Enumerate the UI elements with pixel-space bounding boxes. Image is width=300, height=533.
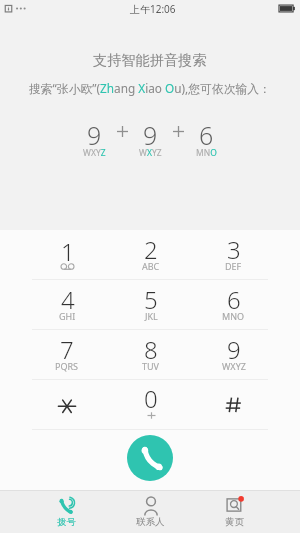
button[interactable]: 8: [109, 330, 192, 380]
staticText: 黄页: [225, 516, 244, 528]
button[interactable]: [25, 380, 109, 430]
button[interactable]: 5: [109, 280, 192, 330]
button[interactable]: 9: [192, 330, 275, 380]
staticText: WXYZ: [139, 147, 162, 159]
staticText: 7: [60, 333, 74, 366]
button[interactable]: 2: [109, 230, 192, 280]
staticText: 8: [144, 333, 158, 366]
staticText: PQRS: [55, 360, 79, 372]
button[interactable]: 联系人: [108, 491, 192, 533]
button[interactable]: Call: [127, 435, 173, 481]
staticText: 9: [143, 118, 158, 152]
staticText: 6: [199, 118, 214, 152]
button[interactable]: 3: [192, 230, 275, 280]
staticText: 上午12:06: [130, 2, 176, 16]
button[interactable]: 0: [109, 380, 192, 430]
staticText: 5: [144, 283, 158, 316]
staticText: GHI: [59, 310, 76, 322]
staticText: WXYZ: [83, 147, 106, 159]
staticText: ABC: [142, 260, 160, 272]
button[interactable]: 1: [25, 230, 109, 280]
staticText: TUV: [142, 360, 159, 372]
button[interactable]: 黄页: [192, 491, 276, 533]
staticText: 6: [227, 283, 241, 316]
staticText: 9: [227, 333, 241, 366]
staticText: 拨号: [57, 516, 76, 528]
staticText: MNO: [222, 310, 245, 322]
staticText: 3: [227, 233, 241, 266]
staticText: WXYZ: [222, 360, 246, 372]
staticText: 0: [144, 382, 158, 415]
button[interactable]: [192, 380, 275, 430]
staticText: JKL: [145, 310, 158, 322]
button[interactable]: 拨号: [24, 491, 108, 533]
button[interactable]: 6: [192, 280, 275, 330]
staticText: MNO: [196, 147, 217, 159]
staticText: 2: [144, 233, 158, 266]
staticText: 9: [87, 118, 102, 152]
button[interactable]: 7: [25, 330, 109, 380]
staticText: 联系人: [136, 516, 165, 528]
staticText: 4: [61, 283, 75, 316]
staticText: 1: [61, 235, 75, 268]
staticText: DEF: [225, 260, 242, 272]
button[interactable]: 4: [25, 280, 109, 330]
staticText: 支持智能拼音搜索: [93, 51, 207, 69]
staticText: 搜索“张小欧”(Zhang Xiao Ou),您可依次输入：: [29, 80, 271, 96]
